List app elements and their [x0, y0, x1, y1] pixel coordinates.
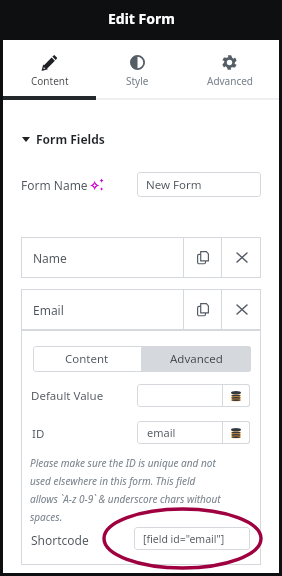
button[interactable]: Content — [33, 346, 141, 372]
staticText: email — [147, 425, 176, 440]
staticText: Email — [33, 302, 64, 318]
other: Style — [130, 55, 145, 70]
button[interactable]: Remove — [222, 237, 261, 278]
staticText: New Form — [146, 177, 202, 193]
other: Content — [42, 55, 57, 70]
staticText: used elsewhere in this form. This field — [30, 474, 196, 488]
button[interactable]: New Form — [137, 172, 261, 197]
staticText: spaces. — [30, 510, 63, 524]
other: Advanced — [222, 55, 237, 70]
button[interactable]: Dynamic tags — [222, 421, 250, 444]
staticText: ID — [32, 426, 45, 442]
staticText: Advanced — [207, 74, 253, 88]
button[interactable]: Style — [91, 40, 183, 100]
staticText: Style — [126, 74, 149, 88]
staticText: Content — [65, 351, 109, 367]
staticText: Default Value — [31, 388, 104, 404]
button[interactable] — [137, 384, 222, 407]
staticText: Name — [33, 250, 67, 266]
staticText: allows `A-z 0-9` & underscore chars with… — [30, 492, 221, 506]
button[interactable]: email — [137, 421, 222, 444]
button[interactable]: Email — [21, 289, 183, 330]
staticText: Form Name — [21, 177, 88, 193]
button[interactable]: [field id="email"] — [134, 527, 250, 550]
staticText: Form Fields — [36, 131, 105, 147]
staticText: Shortcode — [31, 532, 89, 548]
button[interactable]: Form Fields — [22, 131, 105, 147]
staticText: Please make sure the ID is unique and no… — [30, 456, 216, 470]
staticText: Advanced — [170, 351, 223, 367]
button[interactable]: Content — [3, 40, 96, 100]
button[interactable]: Name — [21, 237, 183, 278]
staticText: Content — [31, 74, 69, 88]
staticText: Edit Form — [108, 9, 175, 28]
button[interactable]: Duplicate — [183, 289, 222, 330]
button[interactable]: Duplicate — [183, 237, 222, 278]
staticText: [field id="email"] — [143, 532, 225, 546]
button[interactable]: Dynamic tags — [222, 384, 250, 407]
button[interactable]: Remove — [222, 289, 261, 330]
button[interactable]: Advanced — [183, 40, 276, 100]
button[interactable]: Advanced — [142, 346, 251, 372]
